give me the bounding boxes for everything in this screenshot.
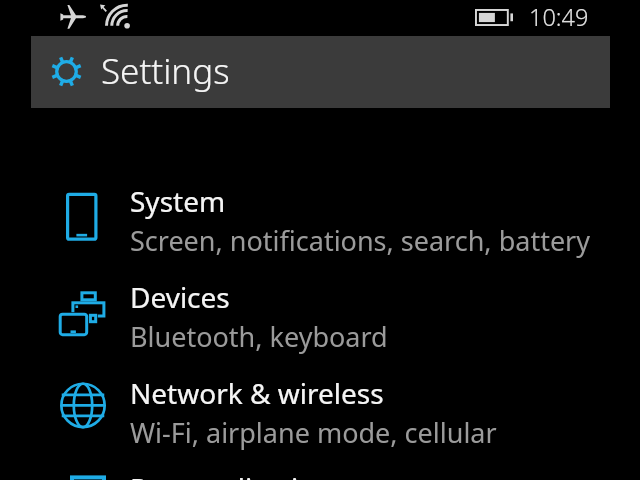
staticText: Wi-Fi, airplane mode, cellular (130, 414, 497, 451)
staticText: Personalization (130, 469, 333, 480)
other: Settings (51, 56, 82, 87)
staticText: System (130, 182, 226, 220)
staticText: Bluetooth, keyboard (130, 318, 388, 355)
other: Wi-Fi connected (99, 2, 131, 30)
other: Airplane mode on (59, 4, 86, 30)
staticText: Settings (101, 47, 230, 95)
other: Battery 60 percent (475, 9, 515, 26)
button[interactable]: Personalization (0, 467, 640, 480)
staticText: 10:49 (529, 1, 589, 33)
staticText: Screen, notifications, search, battery (130, 222, 591, 259)
button[interactable]: System (0, 180, 640, 275)
staticText: Devices (130, 278, 230, 316)
staticText: Network & wireless (130, 374, 384, 412)
button[interactable]: Devices (0, 276, 640, 371)
button[interactable]: Settings (31, 36, 610, 108)
button[interactable]: Network & wireless (0, 372, 640, 467)
